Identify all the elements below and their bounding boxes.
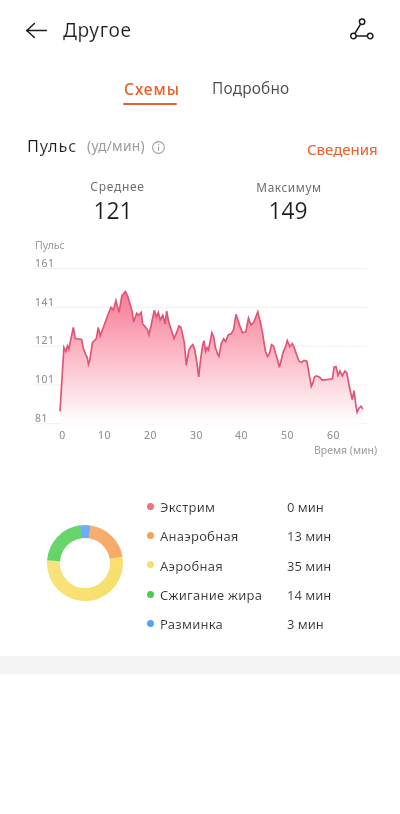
staticText: Максимум — [256, 179, 322, 195]
staticText: 40 — [235, 428, 248, 442]
staticText: 0 — [59, 428, 66, 442]
staticText: Анаэробная — [160, 527, 239, 545]
staticText: 30 — [190, 428, 203, 442]
staticText: 81 — [35, 411, 48, 425]
staticText: Пульс — [35, 238, 65, 252]
staticText: Пульс — [27, 135, 77, 157]
staticText: 20 — [144, 428, 157, 442]
staticText: Среднее — [90, 178, 145, 194]
staticText: Время (мин) — [314, 443, 378, 457]
button[interactable]: Share — [340, 7, 384, 51]
button[interactable] — [144, 491, 330, 520]
staticText: 161 — [35, 256, 55, 270]
staticText: 50 — [281, 428, 294, 442]
staticText: Сведения — [307, 139, 378, 159]
button[interactable] — [144, 579, 330, 608]
staticText: 3 мин — [287, 615, 324, 633]
staticText: 121 — [35, 333, 55, 347]
staticText: Сжигание жира — [160, 586, 263, 604]
staticText: 0 мин — [287, 498, 324, 516]
staticText: (уд/мин) — [87, 136, 145, 155]
staticText: Разминка — [160, 615, 224, 633]
staticText: 10 — [98, 428, 111, 442]
staticText: Другое — [63, 17, 132, 43]
button[interactable]: Back — [14, 8, 58, 52]
staticText: 121 — [93, 195, 133, 226]
staticText: 141 — [35, 295, 55, 309]
button[interactable] — [144, 609, 330, 638]
button[interactable] — [144, 550, 330, 579]
button[interactable] — [144, 521, 330, 550]
button[interactable] — [110, 66, 192, 108]
button[interactable] — [200, 66, 300, 108]
staticText: Экстрим — [160, 498, 216, 516]
staticText: 101 — [35, 372, 55, 386]
button[interactable] — [297, 135, 383, 161]
staticText: Аэробная — [160, 557, 223, 575]
staticText: 149 — [268, 195, 308, 226]
staticText: Подробно — [212, 78, 290, 99]
staticText: 35 мин — [287, 557, 332, 575]
staticText: 14 мин — [287, 586, 332, 604]
button[interactable]: Info — [149, 138, 167, 156]
staticText: Схемы — [124, 78, 181, 99]
staticText: 60 — [327, 428, 340, 442]
staticText: 13 мин — [287, 527, 332, 545]
